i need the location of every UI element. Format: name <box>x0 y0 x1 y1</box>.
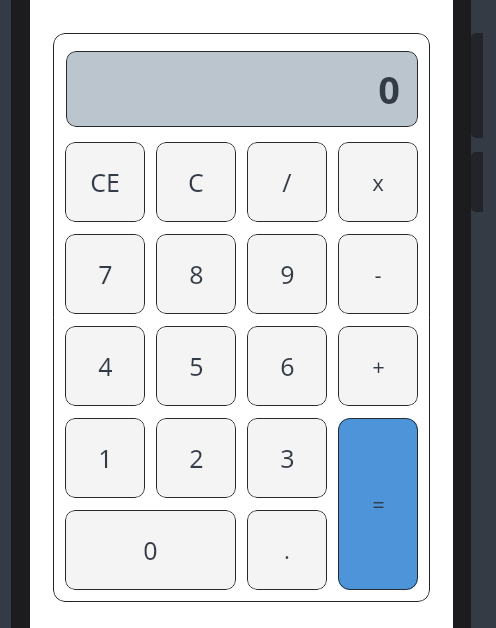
button[interactable]: 0 <box>65 510 236 590</box>
button[interactable]: 9 <box>247 234 327 314</box>
staticText: + <box>372 351 385 381</box>
staticText: 3 <box>280 441 295 475</box>
button[interactable]: - <box>338 234 418 314</box>
staticText: 6 <box>280 349 295 383</box>
button[interactable]: + <box>338 326 418 406</box>
button[interactable]: / <box>247 142 327 222</box>
button[interactable]: 7 <box>65 234 145 314</box>
button[interactable]: 4 <box>65 326 145 406</box>
staticText: 0 <box>378 63 400 115</box>
button[interactable]: CE <box>65 142 145 222</box>
button[interactable]: 5 <box>156 326 236 406</box>
button[interactable]: 3 <box>247 418 327 498</box>
staticText: = <box>372 489 385 519</box>
staticText: 8 <box>189 257 204 291</box>
staticText: / <box>282 165 292 199</box>
staticText: 9 <box>280 257 295 291</box>
staticText: 1 <box>98 441 113 475</box>
button[interactable]: 2 <box>156 418 236 498</box>
button[interactable]: x <box>338 142 418 222</box>
staticText: x <box>372 167 384 197</box>
staticText: . <box>284 535 290 565</box>
button[interactable]: = <box>338 418 418 590</box>
staticText: 7 <box>98 257 113 291</box>
staticText: 5 <box>189 349 204 383</box>
staticText: CE <box>90 165 120 199</box>
button[interactable]: 6 <box>247 326 327 406</box>
button[interactable]: C <box>156 142 236 222</box>
staticText: - <box>374 259 382 289</box>
button[interactable]: 8 <box>156 234 236 314</box>
staticText: C <box>188 165 204 199</box>
staticText: 0 <box>143 533 158 567</box>
button[interactable]: 1 <box>65 418 145 498</box>
staticText: 2 <box>189 441 204 475</box>
staticText: 4 <box>98 349 113 383</box>
button[interactable]: 0 <box>66 51 418 127</box>
button[interactable]: . <box>247 510 327 590</box>
